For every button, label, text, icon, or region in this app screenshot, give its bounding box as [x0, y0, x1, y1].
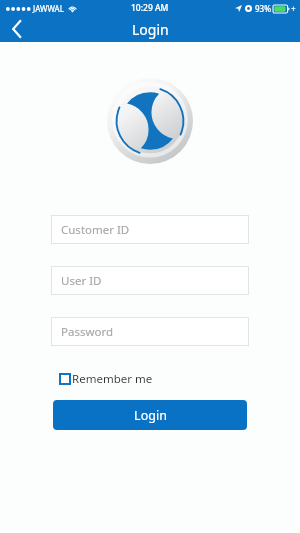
button[interactable]: Back: [0, 16, 34, 42]
button[interactable]: Login: [53, 400, 247, 430]
staticText: Login: [134, 407, 167, 424]
staticText: Login: [132, 20, 169, 39]
button[interactable]: Password: [51, 317, 249, 346]
staticText: 93%: [255, 3, 271, 14]
staticText: +: [291, 3, 296, 14]
staticText: 10:29 AM: [131, 2, 169, 14]
button[interactable]: Remember me: [51, 371, 249, 387]
staticText: Password: [61, 324, 114, 340]
button[interactable]: Customer ID: [51, 215, 249, 244]
button[interactable]: User ID: [51, 266, 249, 295]
staticText: Remember me: [72, 371, 153, 387]
staticText: JAWWAL: [33, 3, 64, 14]
staticText: User ID: [61, 273, 102, 289]
staticText: Customer ID: [61, 222, 130, 238]
